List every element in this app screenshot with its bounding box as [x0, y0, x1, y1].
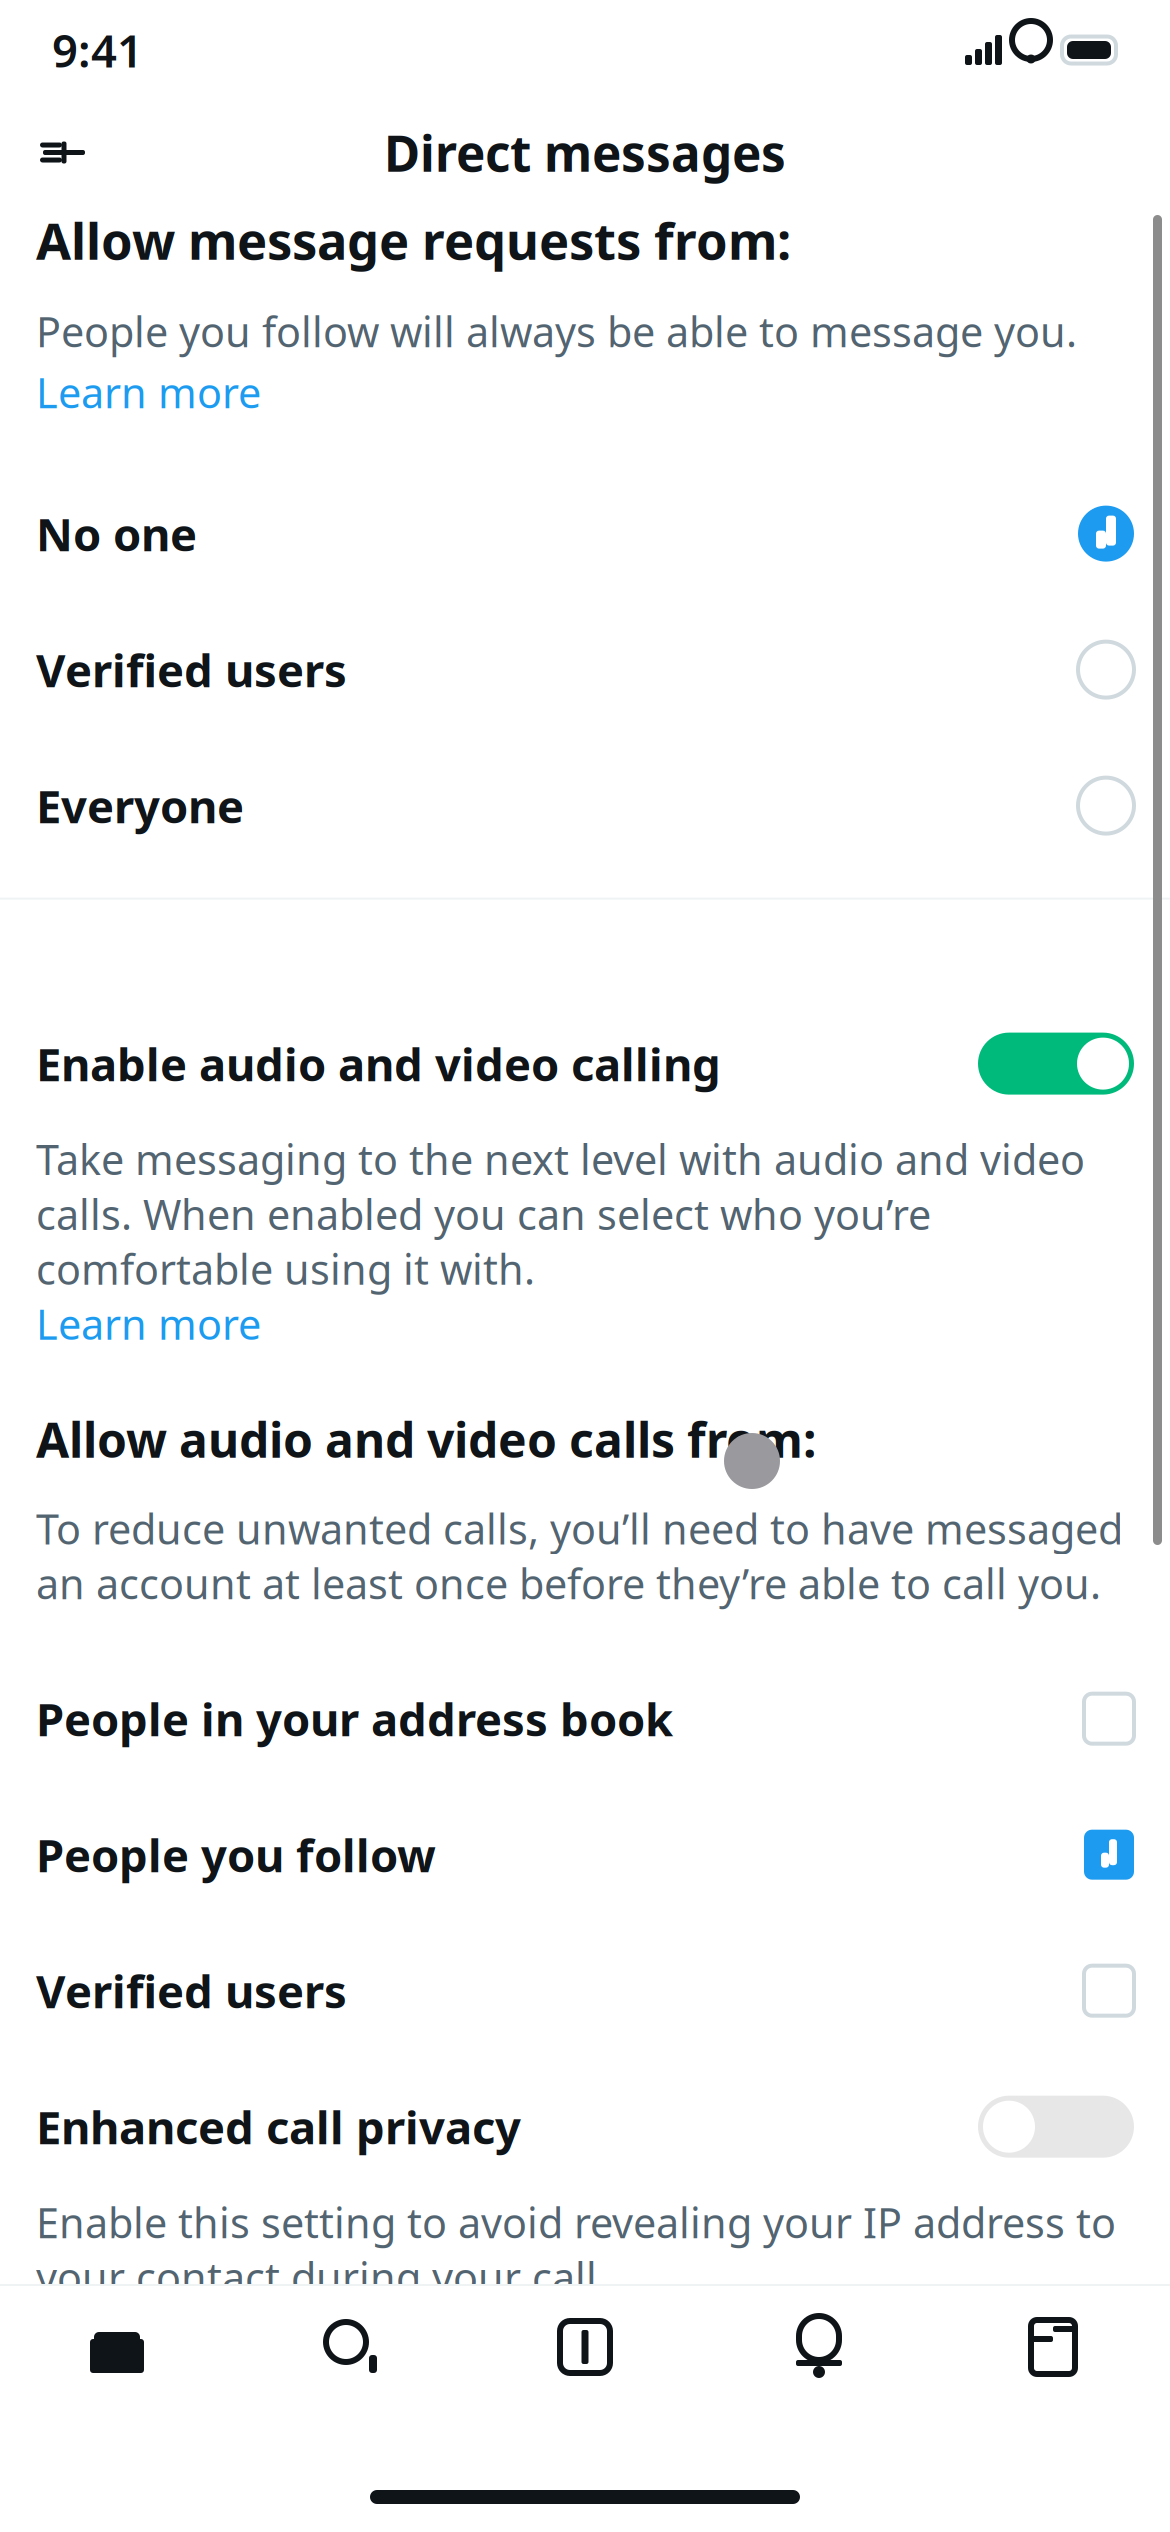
button[interactable]: Notifications [702, 2319, 936, 2375]
button[interactable]: Learn more [0, 359, 297, 420]
staticText: Learn more [36, 1296, 261, 1351]
button[interactable]: Verified users [0, 1923, 1170, 2059]
button[interactable]: Everyone [0, 738, 1170, 874]
button[interactable]: Enable audio and video calling [0, 996, 1170, 1132]
staticText: Take messaging to the next level with au… [36, 1132, 1085, 1296]
staticText: Allow audio and video calls from: [36, 1407, 816, 1471]
staticText: Enable this setting to avoid revealing y… [36, 2195, 1116, 2304]
staticText: 9:41 [52, 20, 143, 80]
staticText: Enable audio and video calling [36, 1033, 721, 1094]
button[interactable]: No one [0, 466, 1170, 602]
staticText: Learn more [36, 365, 261, 420]
button[interactable]: Home [0, 2321, 234, 2373]
button[interactable]: Verified users [0, 602, 1170, 738]
staticText: People you follow will always be able to… [36, 304, 1077, 359]
button[interactable]: Learn more [0, 1296, 297, 1351]
button[interactable]: Enhanced call privacy [0, 2059, 1170, 2195]
staticText: No one [36, 503, 197, 564]
button[interactable]: People you follow [0, 1787, 1170, 1923]
button[interactable]: Back [28, 116, 100, 188]
button[interactable]: Grok [468, 2320, 702, 2374]
staticText: People in your address book [36, 1689, 673, 1749]
staticText: People you follow [36, 1825, 436, 1885]
staticText: Verified users [36, 1961, 347, 2021]
button[interactable]: People in your address book [0, 1651, 1170, 1787]
button[interactable]: Search [234, 2320, 468, 2374]
staticText: Verified users [36, 639, 347, 700]
staticText: Allow message requests from: [36, 206, 791, 274]
staticText: Enhanced call privacy [36, 2097, 521, 2157]
staticText: Everyone [36, 775, 244, 836]
staticText: To reduce unwanted calls, you’ll need to… [36, 1501, 1123, 1611]
staticText: Direct messages [384, 120, 786, 185]
button[interactable]: Messages [936, 2319, 1170, 2375]
